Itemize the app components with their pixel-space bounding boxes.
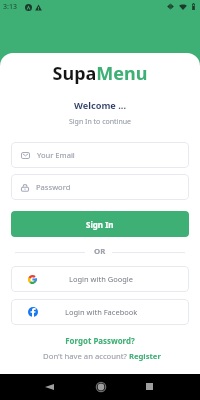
button[interactable]: Home	[90, 376, 111, 397]
button[interactable]: Password	[11, 174, 189, 200]
staticText: Don't have an account? Register	[2, 351, 200, 361]
staticText: Login with Facebook	[65, 307, 138, 317]
staticText: Login with Google	[69, 274, 134, 284]
button[interactable]: Forgot Password?	[0, 336, 200, 347]
staticText: Sign In to continue	[0, 117, 200, 127]
staticText: Forgot Password?	[0, 336, 200, 347]
staticText: SupaMenu	[0, 61, 200, 86]
button[interactable]: Login with Facebook	[11, 299, 189, 325]
staticText: Sign In	[86, 219, 114, 230]
staticText: Welcome ...	[0, 99, 200, 112]
staticText: OR	[94, 246, 106, 257]
button[interactable]: Don't have an account? Register	[2, 351, 200, 361]
staticText: Password	[36, 182, 71, 192]
button[interactable]: Login with Google	[11, 266, 189, 292]
staticText: Your Email	[37, 150, 75, 160]
button[interactable]: Recents	[139, 376, 160, 397]
button[interactable]: Your Email	[11, 142, 189, 168]
staticText: 3:13	[3, 2, 17, 12]
button[interactable]: Sign In	[11, 211, 189, 237]
button[interactable]: Back	[39, 376, 60, 397]
